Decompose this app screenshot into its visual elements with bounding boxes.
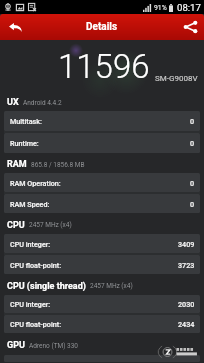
staticText: SM-G9008V <box>155 74 198 83</box>
staticText: CPU <box>7 220 25 231</box>
button[interactable]: Back <box>0 14 30 40</box>
staticText: Multitask: <box>10 117 42 125</box>
button[interactable]: CPU integer: <box>4 234 200 253</box>
staticText: Details <box>86 21 118 33</box>
staticText: Adreno (TM) 330 <box>29 342 79 350</box>
staticText: RAM <box>7 159 27 170</box>
staticText: 2457 MHz (x4) <box>90 282 133 290</box>
staticText: CPU integer: <box>10 240 51 248</box>
button[interactable]: CPU float-point: <box>4 315 200 333</box>
staticText: 865.8 / 1856.8 MB <box>31 161 85 169</box>
staticText: 08:17 <box>177 2 201 13</box>
staticText: Runtime: <box>10 139 39 147</box>
staticText: GPU <box>7 340 25 351</box>
button[interactable]: CPU integer: <box>4 295 200 313</box>
staticText: UX <box>7 97 19 108</box>
button[interactable]: RAM Speed: <box>4 194 200 213</box>
button[interactable]: RAM Operation: <box>4 173 200 192</box>
staticText: 0 <box>190 139 195 147</box>
staticText: 2434 <box>178 320 195 328</box>
staticText: 0 <box>190 117 195 125</box>
button[interactable]: Multitask: <box>4 111 200 131</box>
staticText: 2030 <box>178 300 195 308</box>
staticText: RAM Speed: <box>10 200 50 208</box>
staticText: Android 4.4.2 <box>23 99 62 107</box>
staticText: CPU float-point: <box>10 320 62 328</box>
staticText: CPU integer: <box>10 300 51 308</box>
staticText: RAM Operation: <box>10 179 61 187</box>
button[interactable] <box>4 355 200 362</box>
staticText: 0 <box>190 200 195 208</box>
button[interactable]: Runtime: <box>4 133 200 153</box>
staticText: 11596 <box>58 47 150 86</box>
staticText: 2457 MHz (x4) <box>29 221 72 229</box>
staticText: CPU float-point: <box>10 261 62 269</box>
button[interactable]: Share <box>177 14 204 40</box>
staticText: 3409 <box>178 240 195 248</box>
staticText: 3723 <box>178 261 195 269</box>
staticText: 0 <box>190 179 195 187</box>
staticText: CPU (single thread) <box>7 281 86 292</box>
button[interactable]: CPU float-point: <box>4 255 200 274</box>
staticText: 91% <box>154 4 167 12</box>
